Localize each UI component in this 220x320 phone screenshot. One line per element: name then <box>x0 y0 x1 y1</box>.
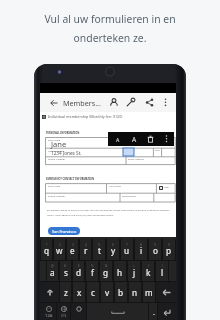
staticText: n <box>132 287 138 298</box>
staticText: Jane <box>51 139 67 149</box>
button[interactable]: Back <box>45 93 63 112</box>
staticText: By signing I agree to enter at my own ri… <box>47 208 175 216</box>
button[interactable]: 3 <box>66 239 79 260</box>
staticText: Phone Number <box>48 157 66 160</box>
button[interactable]: 4 <box>79 239 92 260</box>
staticText: + <box>133 264 135 268</box>
button[interactable]: v <box>100 282 114 302</box>
button[interactable]: c <box>86 282 100 302</box>
button[interactable]: 7 <box>120 239 134 260</box>
button[interactable]: 2 <box>53 239 66 260</box>
button[interactable]: Share <box>142 93 156 112</box>
button[interactable]: m <box>142 282 156 302</box>
staticText: y <box>111 245 116 256</box>
button[interactable]: n <box>128 282 142 302</box>
staticText: - <box>119 264 121 268</box>
staticText: t <box>98 245 101 256</box>
button[interactable]: Account <box>107 93 121 112</box>
button[interactable]: Sign <box>123 93 137 112</box>
staticText: 0 <box>168 243 170 247</box>
button[interactable]: Members... <box>63 98 101 112</box>
button[interactable]: Emoji and symbols <box>40 303 57 320</box>
staticText: Date <box>155 149 160 152</box>
staticText: h <box>117 267 123 278</box>
button[interactable]: ) <box>155 261 169 281</box>
staticText: Last Name <box>109 184 121 187</box>
staticText: Email Address <box>128 157 144 160</box>
button[interactable]: 8 <box>134 239 148 260</box>
staticText: 1 <box>46 243 48 247</box>
button[interactable]: Enter <box>158 303 176 320</box>
staticText: a <box>50 267 55 278</box>
staticText: 9 <box>154 243 156 247</box>
staticText: 8 <box>140 243 142 247</box>
staticText: z <box>64 287 68 298</box>
staticText: g <box>103 267 109 278</box>
staticText: i <box>140 245 143 256</box>
staticText: PERSONAL INFORMATION <box>46 131 80 135</box>
button[interactable]: More options <box>159 93 172 112</box>
button[interactable]: 9 <box>148 239 162 260</box>
staticText: . <box>153 308 155 318</box>
button[interactable]: Settings <box>71 303 87 320</box>
staticText: 7 <box>126 243 128 247</box>
button[interactable]: @ <box>46 261 59 281</box>
button[interactable]: b <box>114 282 128 302</box>
button[interactable]: More <box>161 132 171 146</box>
staticText: r <box>84 245 88 256</box>
staticText: 6 <box>112 243 114 247</box>
staticText: u <box>124 245 130 256</box>
staticText: w <box>56 245 63 256</box>
button[interactable]: $ <box>72 261 85 281</box>
button[interactable]: 0 <box>162 239 176 260</box>
staticText: 4 <box>85 243 87 247</box>
staticText: ( <box>148 264 149 268</box>
staticText: Individual membership (Monthly fee: $120… <box>48 114 123 119</box>
button[interactable]: Delete <box>144 132 156 146</box>
staticText: k <box>146 267 151 278</box>
staticText: Vul al uw formulieren in en onderteken z… <box>44 12 176 45</box>
staticText: $ <box>78 264 80 268</box>
staticText: d <box>76 267 82 278</box>
staticText: o <box>153 245 158 256</box>
staticText: e <box>70 245 75 256</box>
button[interactable]: 5 <box>92 239 106 260</box>
staticText: c <box>91 287 95 298</box>
staticText: First Name <box>48 184 61 187</box>
button[interactable]: 6 <box>106 239 120 260</box>
button[interactable]: Backspace <box>156 282 176 302</box>
staticText: 1234 Jones St. <box>51 150 82 156</box>
staticText: EN <box>61 313 67 319</box>
button[interactable]: x <box>72 282 86 302</box>
button[interactable]: + <box>127 261 141 281</box>
staticText: b <box>118 287 124 298</box>
button[interactable]: Space <box>87 303 149 320</box>
button[interactable]: . <box>149 303 158 320</box>
staticText: Phone Number <box>48 194 66 197</box>
staticText: EMERGENCY CONTACT INFORMATION <box>46 177 95 181</box>
button[interactable]: Font size <box>112 132 124 146</box>
button[interactable]: Font style <box>128 132 140 146</box>
staticText: First Name <box>48 138 61 141</box>
button[interactable]: Shift <box>40 282 59 302</box>
button[interactable]: % <box>85 261 99 281</box>
button[interactable]: & <box>99 261 113 281</box>
button[interactable]: z <box>59 282 72 302</box>
button[interactable]: San Francisco <box>48 227 80 235</box>
button[interactable]: # <box>59 261 72 281</box>
staticText: % <box>91 264 94 268</box>
staticText: f <box>91 267 94 278</box>
staticText: Home Address <box>48 149 65 152</box>
button[interactable]: ( <box>141 261 155 281</box>
button[interactable]: - <box>113 261 127 281</box>
staticText: # <box>64 264 67 268</box>
staticText: Relationship <box>122 194 136 197</box>
staticText: A <box>132 135 137 144</box>
button[interactable]: Change language <box>57 303 71 320</box>
button[interactable]: 1 <box>40 239 53 260</box>
staticText: q <box>44 245 50 256</box>
staticText: A <box>116 136 120 143</box>
staticText: x <box>77 287 82 298</box>
staticText: Male <box>164 186 169 189</box>
staticText: . <box>78 313 80 319</box>
